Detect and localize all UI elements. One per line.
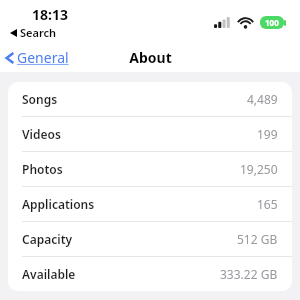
staticText: Search: [20, 25, 57, 40]
staticText: 512 GB: [237, 231, 278, 247]
staticText: Songs: [22, 91, 58, 107]
staticText: Photos: [22, 161, 63, 177]
button[interactable]: Videos: [8, 117, 292, 151]
button[interactable]: Photos: [8, 152, 292, 186]
staticText: 199: [257, 126, 278, 142]
button[interactable]: Songs: [8, 82, 292, 116]
staticText: Videos: [22, 126, 61, 142]
button[interactable]: Applications: [8, 187, 292, 221]
button[interactable]: Back to Search: [10, 25, 57, 40]
button[interactable]: General: [4, 48, 69, 67]
staticText: 19,250: [240, 161, 278, 177]
staticText: 18:13: [32, 5, 68, 24]
staticText: Capacity: [22, 231, 73, 247]
staticText: 165: [257, 196, 278, 212]
staticText: General: [17, 48, 69, 67]
staticText: About: [129, 48, 172, 67]
staticText: 4,489: [247, 91, 278, 107]
staticText: 333.22 GB: [220, 266, 278, 282]
staticText: 100: [265, 17, 279, 28]
button[interactable]: Capacity: [8, 222, 292, 256]
staticText: Available: [22, 266, 76, 282]
staticText: Applications: [22, 196, 95, 212]
button[interactable]: Available: [8, 257, 292, 291]
